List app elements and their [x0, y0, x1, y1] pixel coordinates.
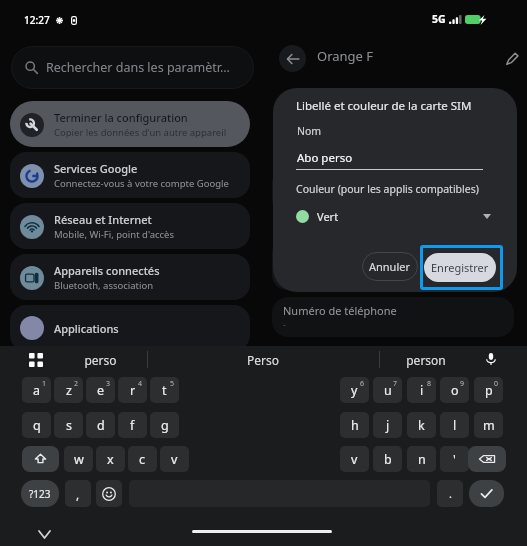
- button[interactable]: z: [54, 377, 83, 403]
- button[interactable]: i: [407, 377, 436, 403]
- staticText: r: [130, 382, 136, 399]
- staticText: Applications: [54, 321, 119, 336]
- button[interactable]: Terminer la configuration: [10, 101, 250, 147]
- staticText: 5G: [432, 12, 446, 26]
- button[interactable]: c: [128, 446, 157, 472]
- button[interactable]: Edit: [501, 47, 523, 69]
- button[interactable]: Emoji: [96, 480, 122, 507]
- staticText: Appareils connectés: [54, 263, 160, 278]
- staticText: 2: [74, 379, 79, 389]
- button[interactable]: Rechercher dans les paramètr…: [11, 46, 254, 89]
- staticText: p: [485, 382, 493, 399]
- button[interactable]: person: [386, 348, 466, 372]
- button[interactable]: Shift: [22, 446, 59, 472]
- button[interactable]: Hide keyboard: [34, 524, 54, 544]
- staticText: y: [351, 382, 358, 399]
- staticText: 12:27: [24, 13, 50, 27]
- staticText: l: [453, 417, 457, 434]
- button[interactable]: ?123: [21, 480, 59, 507]
- button[interactable]: Services Google: [10, 152, 250, 198]
- button[interactable]: .: [437, 480, 463, 507]
- staticText: Bluetooth, association: [54, 279, 154, 292]
- staticText: ,: [76, 486, 80, 502]
- button[interactable]: m: [474, 412, 503, 438]
- button[interactable]: p: [474, 377, 503, 403]
- button[interactable]: Enter: [469, 480, 504, 507]
- button[interactable]: ': [440, 446, 469, 472]
- staticText: f: [130, 417, 135, 434]
- button[interactable]: b: [373, 446, 402, 472]
- staticText: i: [420, 382, 424, 399]
- button[interactable]: ,: [65, 480, 91, 507]
- staticText: d: [97, 417, 105, 434]
- button[interactable]: perso: [60, 348, 140, 372]
- button[interactable]: Keyboard options: [24, 348, 48, 372]
- button[interactable]: s: [54, 412, 83, 438]
- button[interactable]: v: [340, 446, 369, 472]
- staticText: ': [453, 451, 456, 468]
- button[interactable]: r: [118, 377, 147, 403]
- button[interactable]: a: [22, 377, 51, 403]
- button[interactable]: n: [407, 446, 436, 472]
- staticText: Nom: [297, 124, 322, 138]
- button[interactable]: o: [440, 377, 469, 403]
- button[interactable]: Réseau et Internet: [10, 203, 250, 249]
- button[interactable]: Annuler: [362, 252, 418, 281]
- staticText: o: [451, 382, 459, 399]
- button[interactable]: q: [22, 412, 51, 438]
- button[interactable]: y: [340, 377, 369, 403]
- staticText: Copier les données d'un autre appareil: [54, 126, 227, 139]
- staticText: Abo perso: [297, 150, 353, 166]
- staticText: Réseau et Internet: [54, 212, 152, 227]
- button[interactable]: e: [86, 377, 115, 403]
- staticText: b: [384, 451, 392, 468]
- staticText: s: [66, 417, 72, 434]
- staticText: ?123: [29, 487, 51, 501]
- staticText: v: [171, 451, 178, 468]
- button[interactable]: Backspace: [468, 446, 506, 472]
- staticText: perso: [84, 352, 117, 368]
- staticText: Connectez-vous à votre compte Google: [54, 177, 229, 190]
- staticText: u: [384, 382, 392, 399]
- staticText: Vert: [317, 209, 339, 224]
- staticText: Enregistrer: [431, 260, 489, 275]
- staticText: 5: [170, 379, 175, 389]
- staticText: 9: [460, 379, 465, 389]
- button[interactable]: f: [118, 412, 147, 438]
- button[interactable]: Enregistrer: [424, 253, 496, 282]
- button[interactable]: g: [150, 412, 179, 438]
- button[interactable]: t: [150, 377, 179, 403]
- button[interactable]: Vert: [296, 207, 491, 226]
- staticText: v: [351, 451, 358, 468]
- button[interactable]: w: [64, 446, 93, 472]
- staticText: Numéro de téléphone: [283, 303, 397, 318]
- staticText: Rechercher dans les paramètr…: [46, 59, 230, 76]
- button[interactable]: Voice input: [479, 347, 502, 370]
- button[interactable]: Back: [279, 45, 306, 72]
- button[interactable]: d: [86, 412, 115, 438]
- staticText: t: [162, 382, 167, 399]
- button[interactable]: Appareils connectés: [10, 254, 250, 300]
- button[interactable]: j: [373, 412, 402, 438]
- button[interactable]: h: [340, 412, 369, 438]
- staticText: 7: [393, 379, 398, 389]
- staticText: 3: [106, 379, 111, 389]
- button[interactable]: Perso: [223, 348, 303, 372]
- staticText: q: [33, 417, 41, 434]
- staticText: Annuler: [369, 259, 411, 274]
- button[interactable]: u: [373, 377, 402, 403]
- button[interactable]: Applications: [10, 305, 250, 351]
- button[interactable]: v: [160, 446, 189, 472]
- staticText: Orange F: [317, 47, 374, 65]
- staticText: 4: [138, 379, 143, 389]
- staticText: Services Google: [54, 161, 138, 176]
- button[interactable]: x: [96, 446, 125, 472]
- staticText: 1: [42, 379, 47, 389]
- staticText: 0: [494, 379, 499, 389]
- staticText: Mobile, Wi-Fi, point d'accès: [54, 228, 174, 241]
- button[interactable]: k: [407, 412, 436, 438]
- staticText: Couleur (pour les applis compatibles): [296, 182, 479, 196]
- button[interactable]: l: [440, 412, 469, 438]
- staticText: k: [418, 417, 425, 434]
